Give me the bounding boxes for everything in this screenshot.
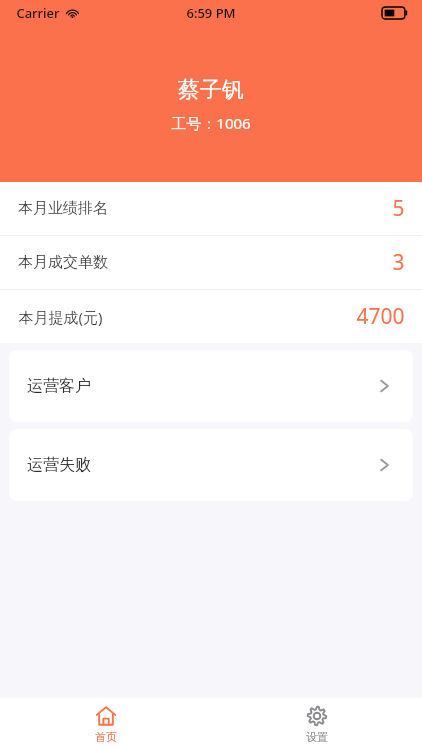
staticText: 6:59 PM — [186, 4, 236, 22]
staticText: 本月业绩排名 — [18, 199, 108, 218]
button[interactable]: 设置 — [211, 700, 422, 749]
staticText: 首页 — [95, 730, 117, 744]
button[interactable]: 运营失败 — [9, 429, 413, 501]
staticText: 运营失败 — [27, 455, 91, 475]
button[interactable]: 本月业绩排名 — [0, 182, 422, 235]
button[interactable]: 首页 — [0, 700, 211, 749]
button[interactable]: 运营客户 — [9, 350, 413, 422]
button[interactable]: 本月提成(元) — [0, 290, 422, 343]
staticText: 本月提成(元) — [18, 307, 103, 327]
staticText: Carrier — [16, 4, 60, 22]
staticText: 工号：1006 — [171, 113, 251, 133]
staticText: 3 — [392, 248, 405, 277]
staticText: 运营客户 — [27, 376, 91, 396]
staticText: 5 — [392, 194, 405, 223]
button[interactable]: 本月成交单数 — [0, 236, 422, 289]
staticText: 4700 — [356, 302, 405, 331]
staticText: 本月成交单数 — [18, 253, 108, 272]
staticText: 蔡子钒 — [178, 76, 244, 104]
staticText: 设置 — [306, 730, 328, 744]
